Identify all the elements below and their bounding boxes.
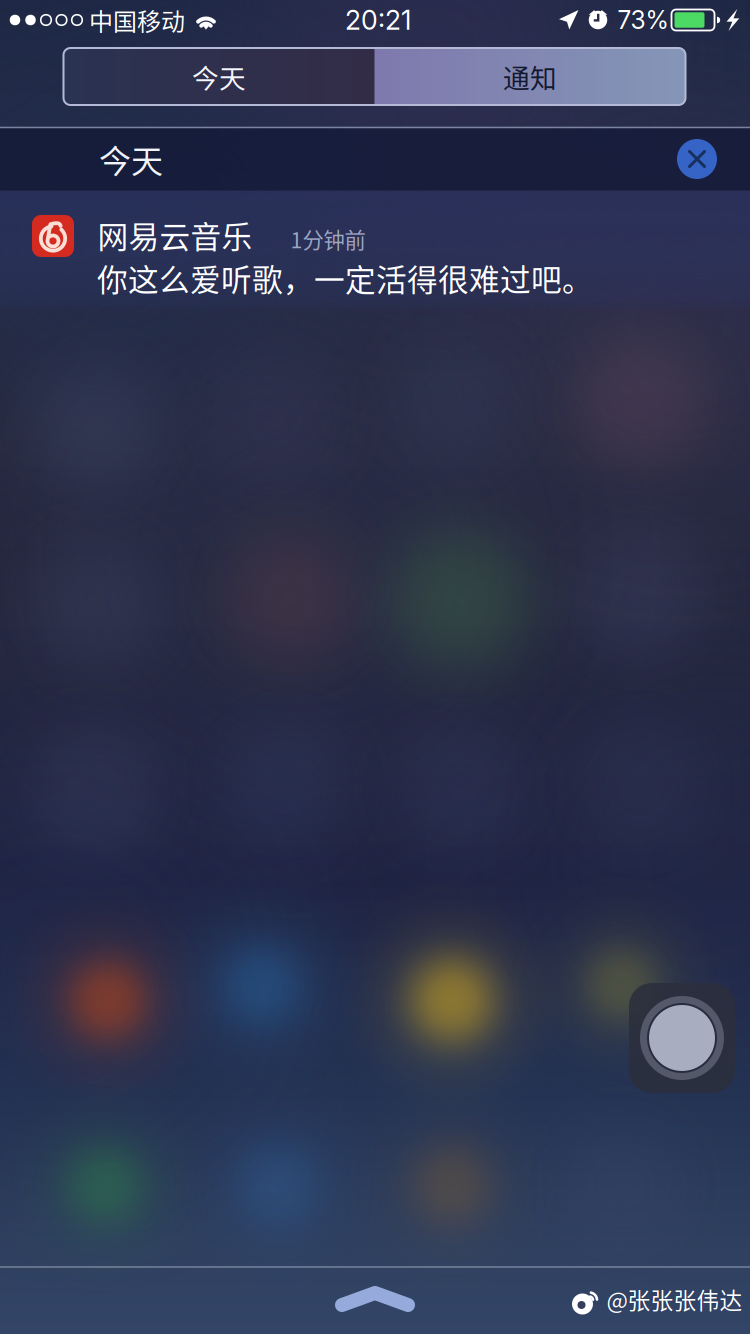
staticText: 网易云音乐 — [97, 213, 252, 257]
staticText: 通知 — [503, 57, 557, 96]
button[interactable]: AssistiveTouch — [629, 983, 735, 1093]
staticText: 今天 — [192, 57, 246, 96]
button[interactable]: 通知 — [374, 48, 685, 105]
button[interactable]: 网易云音乐 — [0, 191, 750, 313]
staticText: 今天 — [99, 136, 163, 182]
button[interactable]: Clear notifications — [673, 135, 721, 183]
staticText: 73% — [617, 5, 668, 35]
button[interactable]: 今天 — [63, 48, 374, 105]
staticText: 中国移动 — [89, 3, 185, 37]
staticText: 1分钟前 — [290, 224, 365, 254]
staticText: 20:21 — [345, 4, 411, 36]
staticText: @张张张伟达 — [606, 1283, 742, 1315]
staticText: 你这么爱听歌，一定活得很难过吧。 — [97, 256, 593, 300]
